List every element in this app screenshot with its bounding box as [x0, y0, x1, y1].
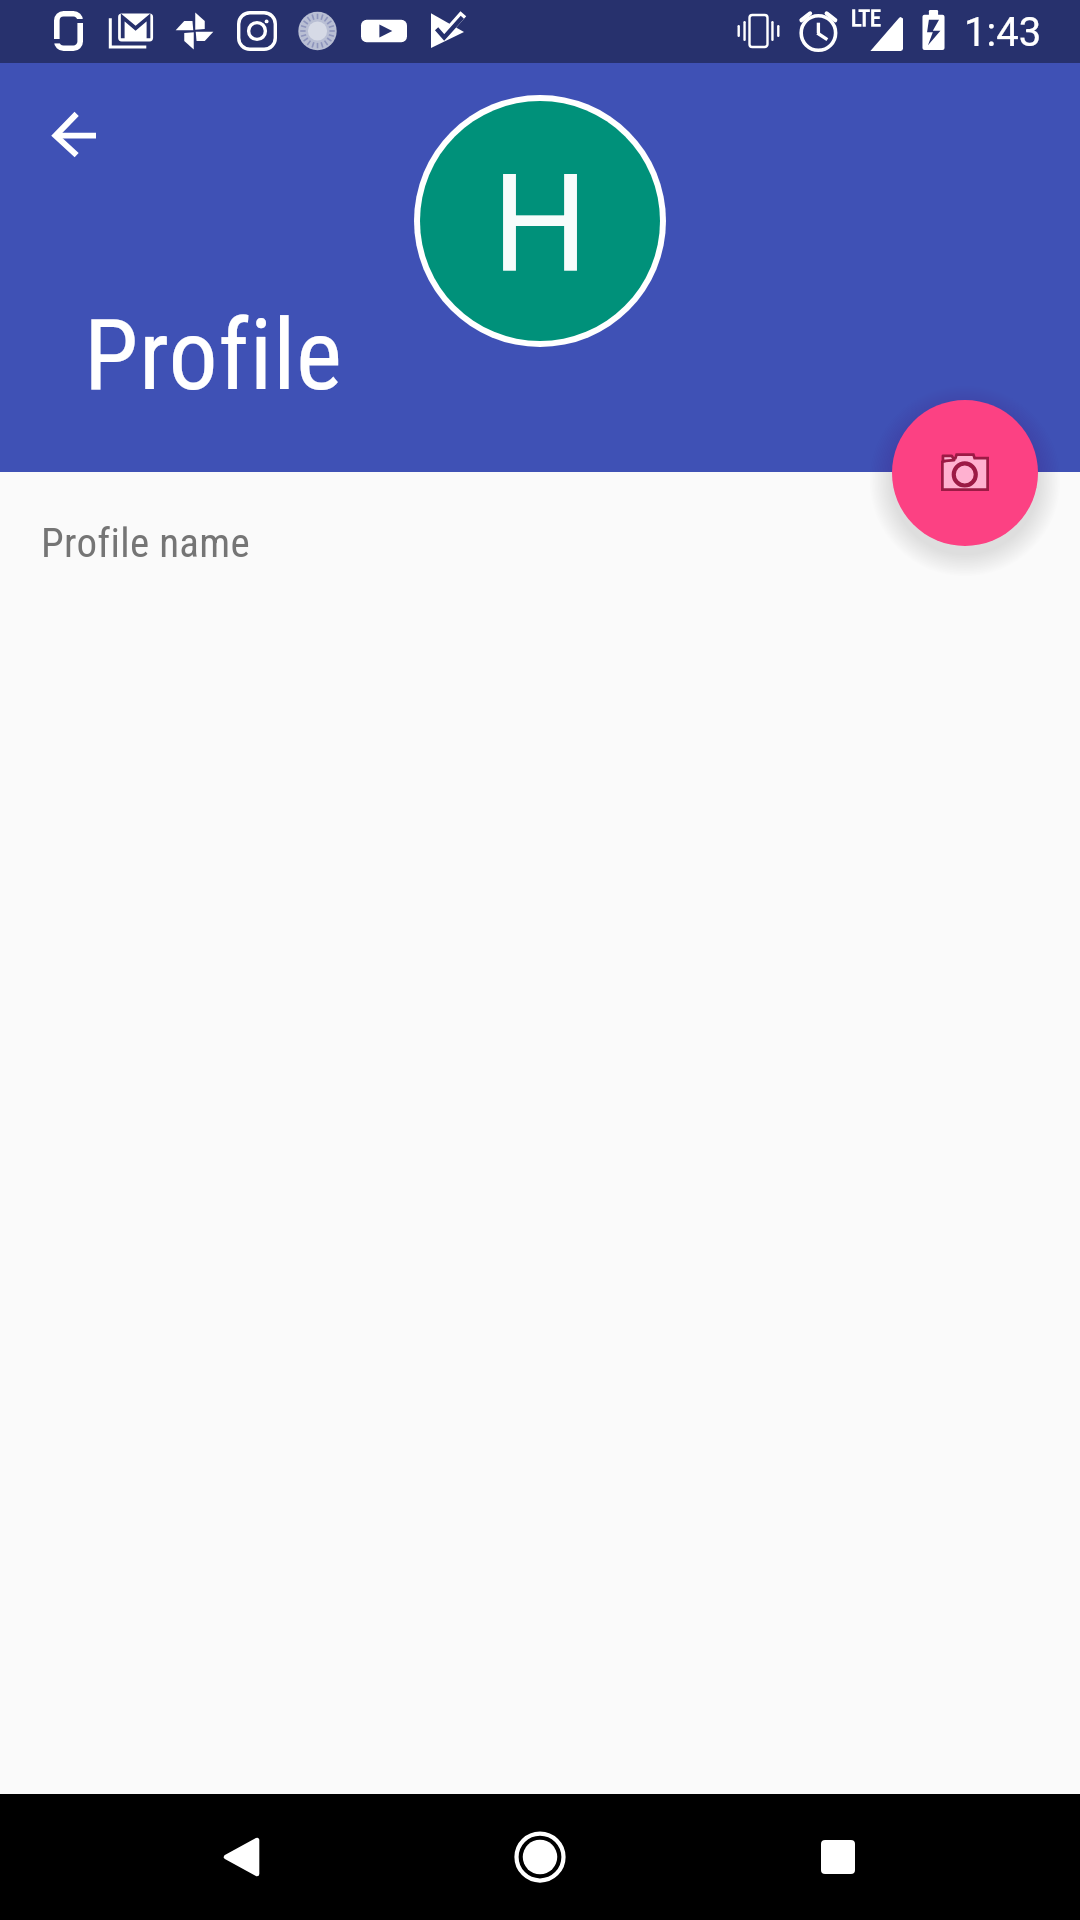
button[interactable]: Recent apps — [794, 1813, 882, 1901]
staticText: LTE — [851, 6, 881, 32]
button[interactable]: Change profile photo — [892, 400, 1038, 546]
staticText: 1:43 — [964, 9, 1042, 56]
button[interactable]: Back — [197, 1813, 285, 1901]
button[interactable]: Profile photo — [420, 101, 660, 341]
button[interactable]: Home — [496, 1813, 584, 1901]
staticText: Profile name — [41, 519, 251, 567]
staticText: H — [492, 146, 589, 304]
button[interactable]: Back — [30, 90, 118, 178]
staticText: Profile — [84, 298, 343, 413]
